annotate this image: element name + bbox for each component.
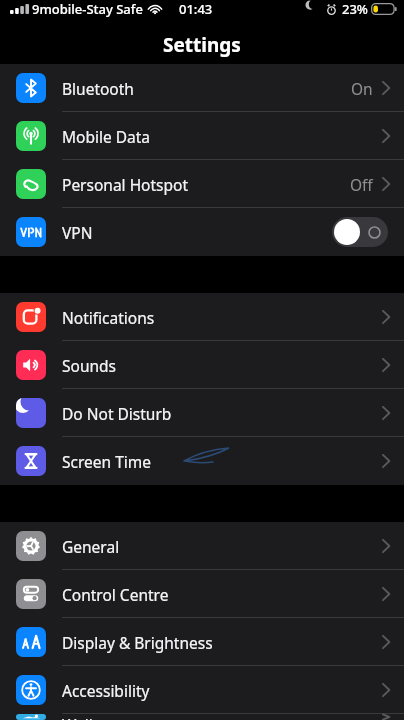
button[interactable]: VPN [0, 208, 404, 256]
staticText: Control Centre [62, 584, 169, 605]
staticText: VPN [62, 222, 93, 243]
staticText: Notifications [62, 307, 155, 328]
button[interactable]: VPN toggle [332, 217, 388, 247]
button[interactable]: Wallpaper [0, 714, 404, 720]
staticText: Mobile Data [62, 126, 151, 147]
button[interactable]: General [0, 522, 404, 570]
staticText: 9mobile-Stay Safe [32, 0, 143, 18]
staticText: Sounds [62, 355, 117, 376]
staticText: On [351, 78, 373, 99]
staticText: Do Not Disturb [62, 403, 172, 424]
staticText: Settings [163, 32, 241, 58]
staticText: Screen Time [62, 451, 151, 472]
button[interactable]: Do Not Disturb [0, 389, 404, 437]
staticText: Wallpaper [62, 714, 136, 720]
staticText: Bluetooth [62, 78, 134, 99]
button[interactable]: Personal Hotspot [0, 160, 404, 208]
staticText: Accessibility [62, 680, 150, 701]
button[interactable]: Mobile Data [0, 112, 404, 160]
staticText: General [62, 536, 120, 557]
button[interactable]: Screen Time [0, 437, 404, 485]
button[interactable]: Display & Brightness [0, 618, 404, 666]
button[interactable]: Control Centre [0, 570, 404, 618]
staticText: Display & Brightness [62, 632, 213, 653]
staticText: Off [350, 174, 373, 195]
button[interactable]: Sounds [0, 341, 404, 389]
staticText: Personal Hotspot [62, 174, 189, 195]
button[interactable]: Notifications [0, 293, 404, 341]
button[interactable]: Accessibility [0, 666, 404, 714]
staticText: 01:43 [179, 0, 213, 18]
button[interactable]: Bluetooth [0, 64, 404, 112]
staticText: 23% [342, 0, 368, 18]
